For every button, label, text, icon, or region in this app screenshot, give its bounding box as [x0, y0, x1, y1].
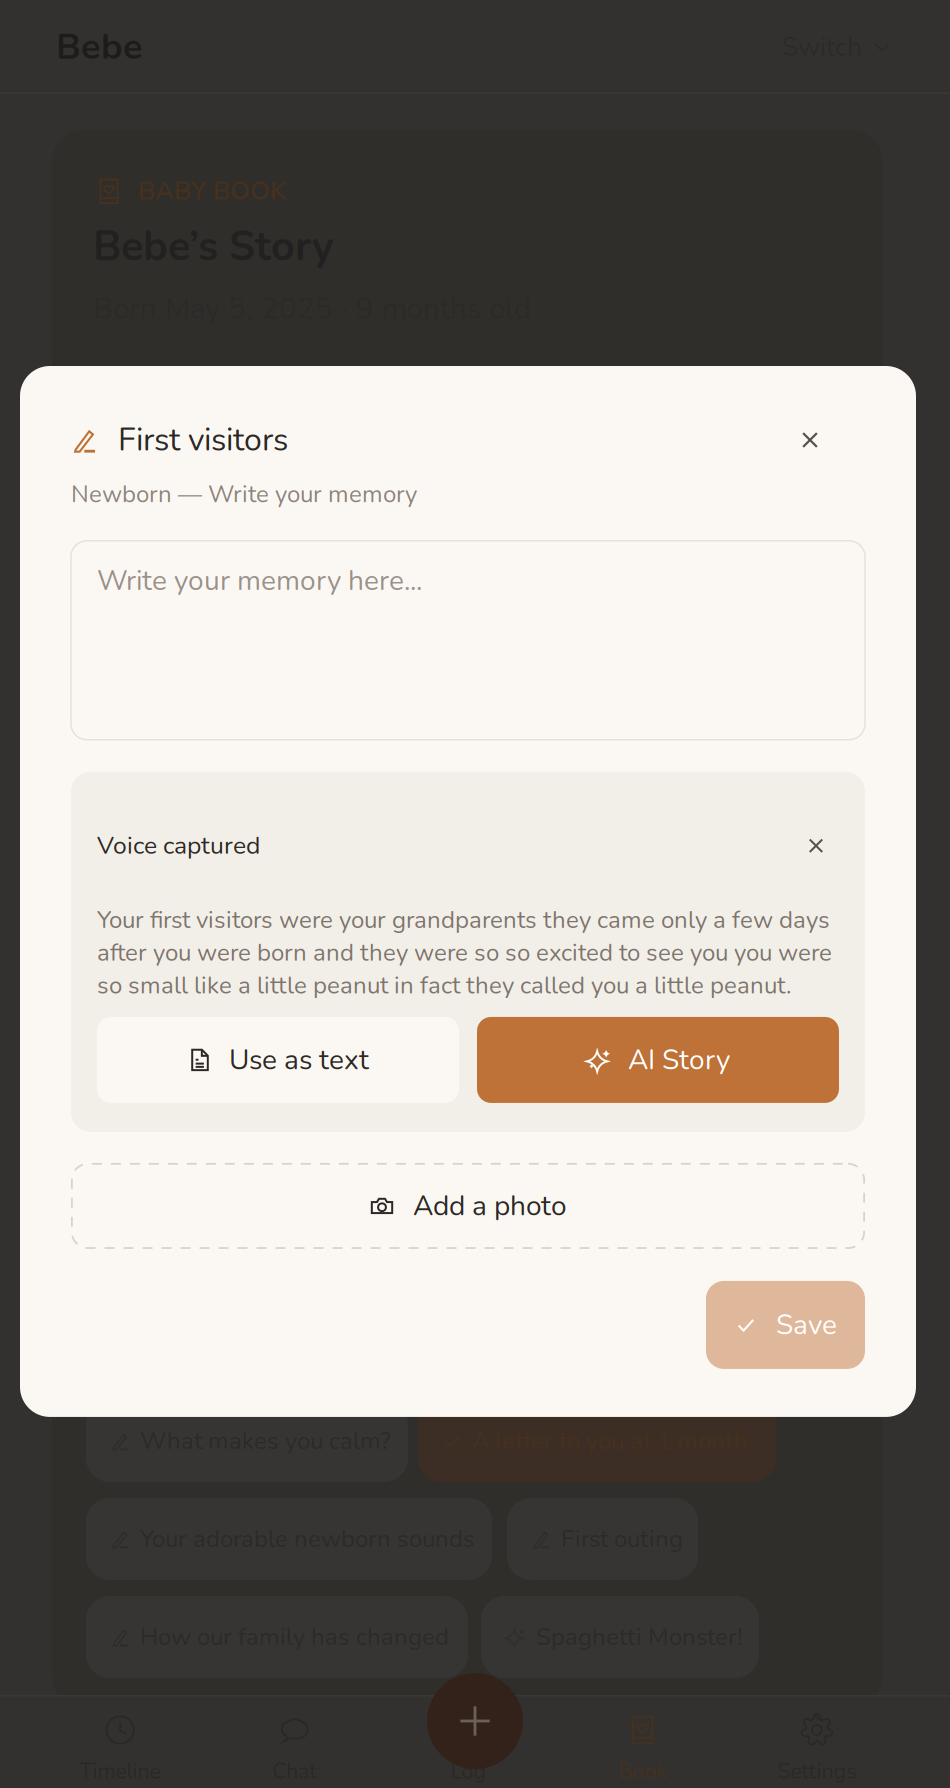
staticText: Book — [618, 1757, 667, 1786]
button[interactable]: Add a photo — [71, 1163, 865, 1249]
button[interactable]: Discard voice capture — [793, 823, 839, 869]
staticText: Your first visitors were your grandparen… — [97, 904, 832, 1002]
staticText: Spaghetti Monster! — [536, 1621, 742, 1653]
staticText: Bebe — [56, 22, 143, 71]
staticText: Bebe’s Story — [93, 219, 334, 275]
staticText: Your adorable newborn sounds — [140, 1523, 475, 1555]
staticText: Newborn — Write your memory — [71, 478, 417, 511]
staticText: Add a photo — [413, 1187, 567, 1225]
staticText: Log — [450, 1757, 486, 1786]
staticText: Voice captured — [97, 829, 260, 862]
staticText: First outing — [561, 1523, 683, 1555]
button[interactable]: A letter to you at 1 month — [418, 1400, 776, 1482]
button[interactable]: Book — [556, 1695, 730, 1788]
button[interactable]: Close — [783, 413, 837, 467]
staticText: How our family has changed — [140, 1621, 449, 1653]
button[interactable]: What makes you calm? — [86, 1400, 408, 1482]
staticText: AI Story — [628, 1041, 730, 1079]
staticText: What makes you calm? — [140, 1425, 391, 1457]
staticText: Save — [776, 1306, 837, 1344]
button[interactable]: Save — [706, 1281, 865, 1369]
staticText: First visitors — [118, 418, 288, 462]
button[interactable]: AI Story — [477, 1017, 839, 1103]
staticText: Use as text — [229, 1041, 369, 1079]
staticText: Write your memory here... — [97, 562, 422, 600]
button[interactable]: Use as text — [97, 1017, 459, 1103]
button[interactable]: Log — [427, 1673, 523, 1769]
staticText: Chat — [272, 1757, 316, 1786]
staticText: Settings — [777, 1757, 856, 1786]
button[interactable]: Log — [381, 1695, 556, 1788]
staticText: BABY BOOK — [138, 174, 286, 209]
